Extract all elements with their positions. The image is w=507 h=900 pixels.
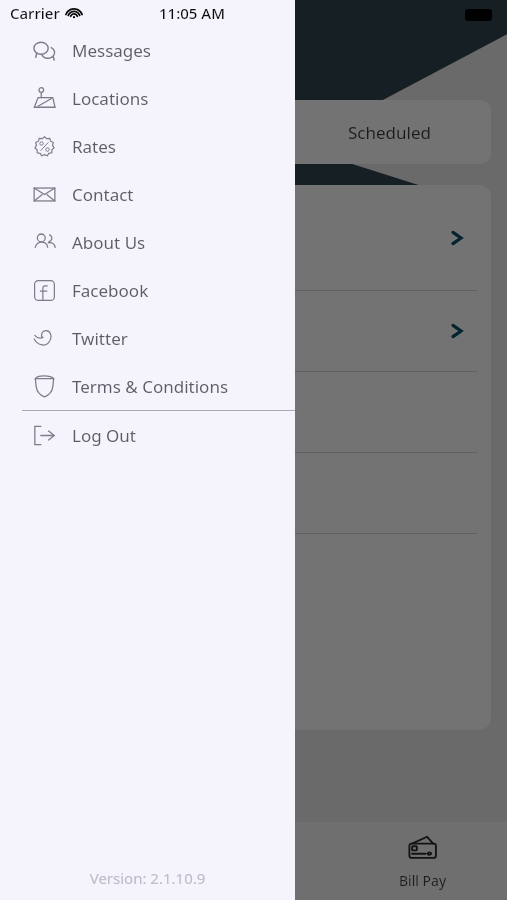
button[interactable]: Contact [0,170,295,218]
staticText: Bill Pay [399,871,447,890]
staticText: Version: 2.1.10.9 [0,868,295,888]
button[interactable] [8,372,491,452]
button[interactable]: Terms & Conditions [0,362,295,410]
button[interactable]: Twitter [0,314,295,362]
staticText: Messages [72,39,152,62]
button[interactable] [8,185,491,290]
button[interactable] [8,453,491,533]
button[interactable]: Scheduled [8,100,491,164]
staticText: Facebook [72,279,149,302]
staticText: 11:05 AM [159,3,225,23]
button[interactable]: Deposit [169,822,338,900]
button[interactable]: Log Out [0,411,295,459]
button[interactable]: Messages [0,26,295,74]
staticText: Log Out [72,424,136,447]
staticText: Transfer [57,871,112,890]
button[interactable]: Locations [0,74,295,122]
staticText: Scheduled [348,121,431,144]
staticText: Contact [72,183,134,206]
staticText: About Us [72,231,146,254]
staticText: Carrier [10,3,60,23]
button[interactable]: Rates [0,122,295,170]
button[interactable]: Facebook [0,266,295,314]
button[interactable]: Bill Pay [338,822,507,900]
staticText: Twitter [72,327,128,350]
staticText: Terms & Conditions [72,375,229,398]
button[interactable]: Transfer [0,822,169,900]
staticText: Locations [72,87,149,110]
staticText: Rates [72,135,116,158]
button[interactable]: About Us [0,218,295,266]
button[interactable] [8,291,491,371]
